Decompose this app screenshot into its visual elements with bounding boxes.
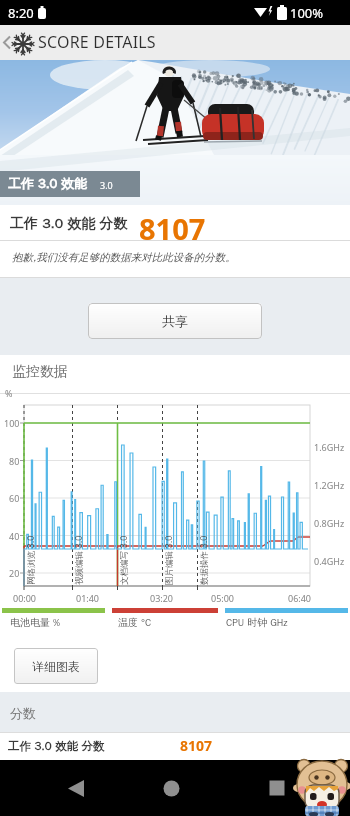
staticText: 1.6GHz bbox=[314, 441, 345, 453]
staticText: 00:00 bbox=[13, 592, 37, 604]
staticText: 1.2GHz bbox=[314, 479, 345, 491]
staticText: 01:40 bbox=[76, 592, 100, 604]
staticText: 8107 bbox=[180, 736, 213, 755]
staticText: 温度 °C bbox=[118, 616, 152, 629]
button[interactable] bbox=[56, 770, 96, 806]
staticText: 03:20 bbox=[150, 592, 174, 604]
staticText: 0.8GHz bbox=[314, 517, 345, 529]
button[interactable] bbox=[0, 25, 56, 60]
staticText: 分数 bbox=[10, 705, 36, 721]
staticText: 详细图表 bbox=[32, 659, 80, 674]
staticText: 监控数据 bbox=[12, 363, 68, 381]
staticText: 3.0 bbox=[100, 179, 113, 191]
staticText: 电池电量 % bbox=[10, 616, 60, 629]
staticText: 抱歉,我们没有足够的数据来对比此设备的分数。 bbox=[12, 251, 236, 264]
button[interactable]: 详细图表 bbox=[14, 648, 98, 684]
staticText: 工作 3.0 效能 bbox=[8, 175, 88, 191]
staticText: % bbox=[5, 387, 13, 399]
staticText: CPU 时钟 GHz bbox=[226, 616, 288, 629]
staticText: 05:00 bbox=[211, 592, 235, 604]
staticText: SCORE DETAILS bbox=[38, 31, 156, 53]
staticText: 100 bbox=[4, 417, 20, 429]
staticText: 8107 bbox=[139, 209, 206, 244]
staticText: 60 bbox=[9, 492, 20, 504]
button[interactable] bbox=[151, 770, 191, 806]
staticText: 8:20 bbox=[8, 4, 34, 22]
staticText: 工作 3.0 效能 分数 bbox=[8, 739, 105, 753]
staticText: 0.4GHz bbox=[314, 555, 345, 567]
staticText: 06:40 bbox=[288, 592, 312, 604]
staticText: 视频编辑 3.0 bbox=[74, 535, 85, 585]
staticText: 图片编辑 3.0 bbox=[164, 535, 175, 585]
staticText: 共享 bbox=[162, 313, 188, 329]
staticText: 20 bbox=[9, 567, 20, 579]
button[interactable] bbox=[257, 770, 297, 806]
staticText: 100% bbox=[290, 4, 324, 22]
staticText: 网络浏览 3.0 bbox=[26, 535, 37, 585]
staticText: 文档编写 3.0 bbox=[119, 535, 130, 585]
staticText: 80 bbox=[9, 455, 20, 467]
staticText: 40 bbox=[9, 530, 20, 542]
button[interactable]: 共享 bbox=[88, 303, 262, 339]
staticText: 数据操作 3.0 bbox=[199, 535, 210, 585]
button[interactable]: 工作 3.0 效能 分数 bbox=[0, 732, 350, 760]
staticText: 工作 3.0 效能 分数 bbox=[10, 215, 128, 233]
